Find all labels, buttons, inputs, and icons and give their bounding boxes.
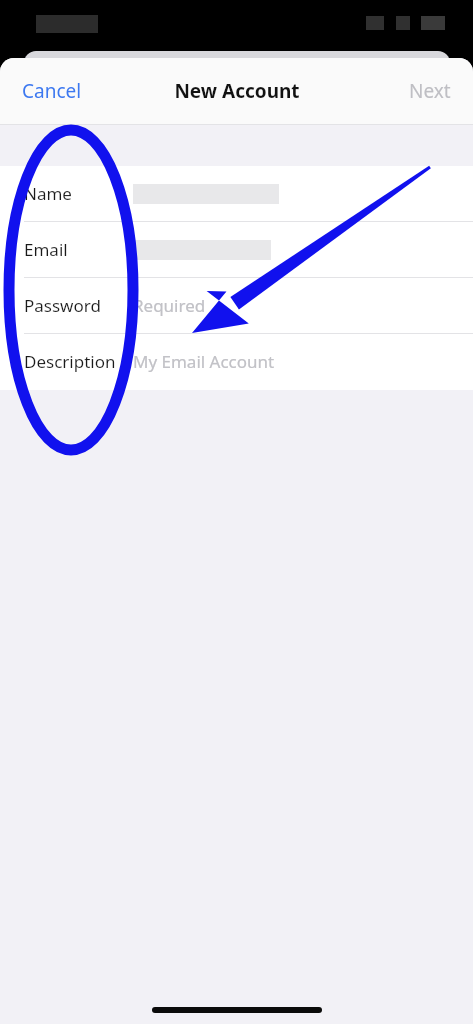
staticText: Name bbox=[24, 182, 72, 205]
staticText: Required bbox=[133, 294, 206, 317]
button[interactable]: Password bbox=[0, 278, 473, 333]
button[interactable]: Description bbox=[0, 334, 473, 389]
staticText: Description bbox=[24, 350, 116, 373]
staticText: My Email Account bbox=[133, 350, 275, 373]
staticText: New Account bbox=[174, 78, 300, 104]
staticText: Password bbox=[24, 294, 101, 317]
staticText: Next bbox=[409, 78, 451, 104]
staticText: Cancel bbox=[22, 78, 82, 104]
staticText: Email bbox=[24, 238, 68, 261]
button[interactable]: Cancel bbox=[0, 68, 104, 114]
button[interactable]: Next bbox=[387, 68, 473, 114]
button[interactable]: Name bbox=[0, 166, 473, 221]
button[interactable]: Email bbox=[0, 222, 473, 277]
